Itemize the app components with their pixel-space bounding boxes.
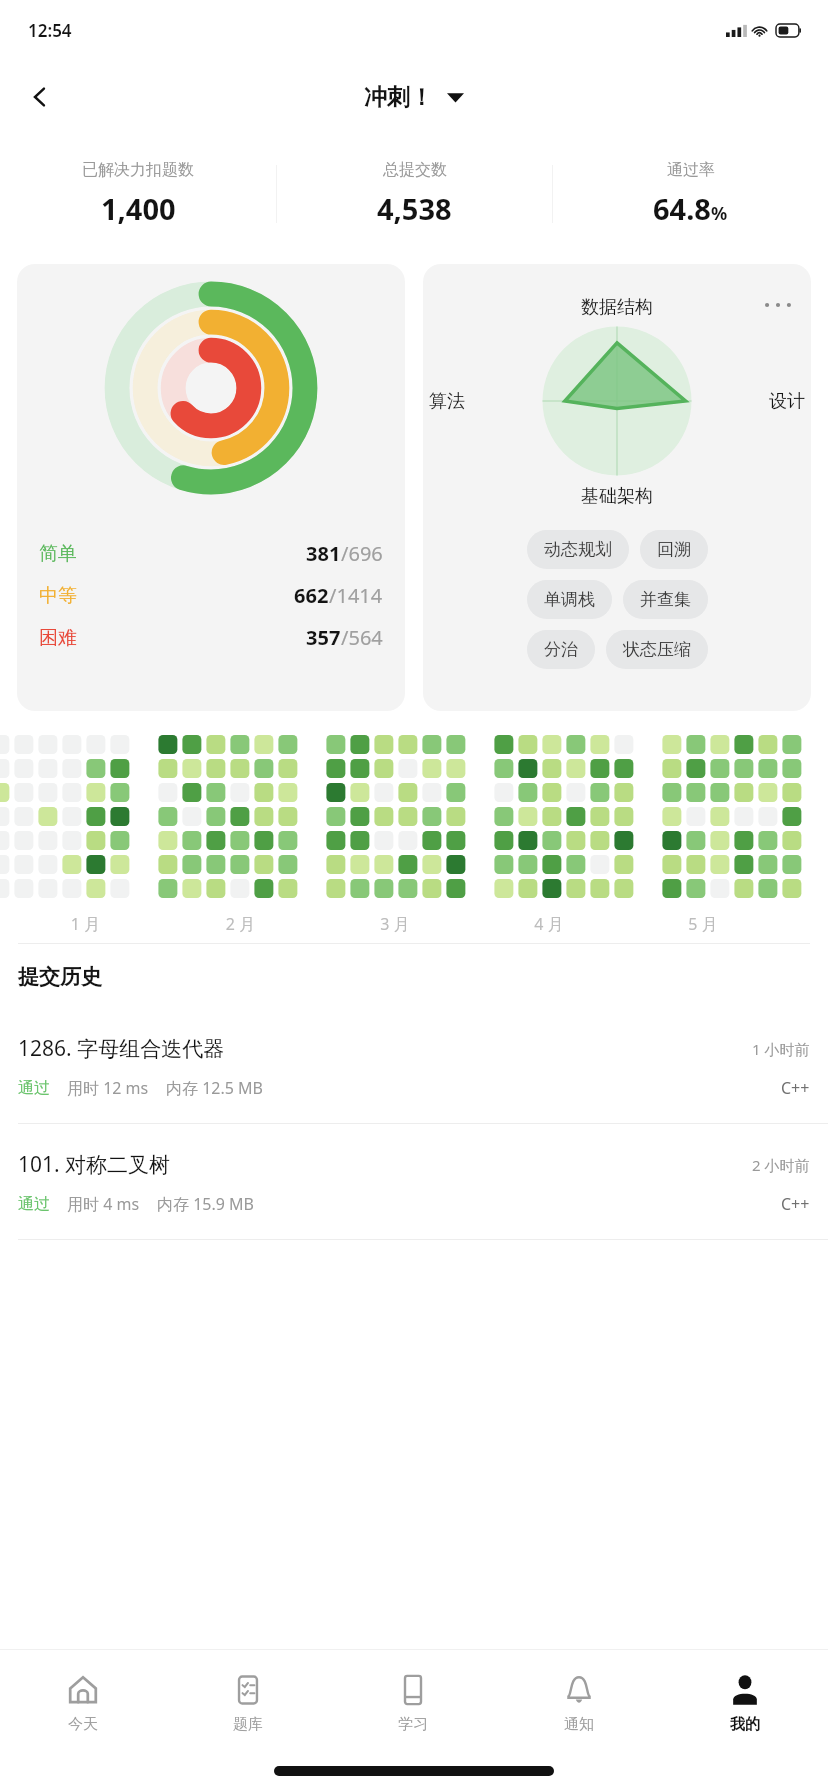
button[interactable]: 我的 — [662, 1650, 828, 1758]
staticText: 数据结构 — [581, 296, 653, 319]
staticText: 通过 — [18, 1078, 50, 1098]
button[interactable]: 简单 — [17, 264, 405, 711]
staticText: C++ — [781, 1077, 810, 1099]
button[interactable]: 并查集 — [623, 580, 708, 619]
button[interactable]: 回溯 — [640, 530, 708, 569]
staticText: 内存 15.9 MB — [157, 1193, 254, 1215]
staticText: 3 月 — [318, 913, 472, 935]
staticText: 通过率 — [667, 160, 715, 180]
staticText: 并查集 — [640, 589, 691, 610]
button[interactable]: 分治 — [527, 630, 595, 669]
button[interactable]: More options — [761, 288, 795, 322]
staticText: 101. 对称二叉树 — [18, 1150, 171, 1179]
staticText: 通过 — [18, 1194, 50, 1214]
staticText: 4 月 — [472, 913, 626, 935]
staticText: 总提交数 — [383, 160, 447, 180]
button[interactable]: 总提交数 — [277, 160, 552, 228]
button[interactable]: More options — [423, 264, 811, 711]
staticText: 简单 — [39, 542, 77, 566]
staticText: 单调栈 — [544, 589, 595, 610]
button[interactable]: 通过率 — [553, 160, 828, 228]
staticText: 12:54 — [28, 19, 72, 42]
staticText: 基础架构 — [581, 485, 653, 508]
staticText: 357 — [306, 624, 341, 651]
staticText: 381 — [306, 540, 341, 567]
button[interactable]: 单调栈 — [527, 580, 612, 619]
staticText: 2 月 — [163, 913, 318, 935]
staticText: 冲刺！ — [364, 83, 433, 112]
staticText: 64.8 — [653, 189, 711, 228]
staticText: 动态规划 — [544, 539, 612, 560]
staticText: 内存 12.5 MB — [166, 1077, 263, 1099]
button[interactable]: Back — [12, 69, 68, 125]
staticText: 提交历史 — [18, 964, 102, 990]
button[interactable]: 冲刺！ — [364, 83, 464, 112]
staticText: 题库 — [233, 1715, 263, 1734]
button[interactable]: 今天 — [0, 1650, 165, 1758]
staticText: 4,538 — [377, 189, 452, 228]
staticText: 5 月 — [626, 913, 780, 935]
staticText: 学习 — [398, 1715, 428, 1734]
staticText: 设计 — [769, 390, 805, 413]
staticText: 1286. 字母组合迭代器 — [18, 1034, 225, 1063]
staticText: 1,400 — [101, 189, 176, 228]
staticText: 今天 — [68, 1715, 98, 1734]
staticText: 用时 4 ms — [67, 1193, 140, 1215]
staticText: 回溯 — [657, 539, 691, 560]
staticText: /696 — [341, 540, 383, 567]
button[interactable]: 学习 — [330, 1650, 496, 1758]
staticText: 分治 — [544, 639, 578, 660]
staticText: 2 小时前 — [752, 1155, 810, 1175]
button[interactable]: 已解决力扣题数 — [0, 160, 276, 228]
button[interactable]: 动态规划 — [527, 530, 629, 569]
staticText: % — [711, 201, 728, 226]
staticText: 已解决力扣题数 — [82, 160, 194, 180]
button[interactable]: 1286. 字母组合迭代器 — [0, 1008, 828, 1123]
staticText: 用时 12 ms — [67, 1077, 149, 1099]
button[interactable]: 状态压缩 — [606, 630, 708, 669]
staticText: /564 — [341, 624, 383, 651]
staticText: 通知 — [564, 1715, 594, 1734]
staticText: 1 小时前 — [752, 1039, 810, 1059]
staticText: 算法 — [429, 390, 465, 413]
button[interactable]: 通知 — [496, 1650, 662, 1758]
staticText: /1414 — [329, 582, 383, 609]
staticText: 状态压缩 — [623, 639, 691, 660]
staticText: 中等 — [39, 584, 77, 608]
staticText: 1 月 — [8, 913, 163, 935]
staticText: 我的 — [730, 1715, 760, 1734]
button[interactable]: 题库 — [165, 1650, 330, 1758]
staticText: 662 — [294, 582, 329, 609]
staticText: C++ — [781, 1193, 810, 1215]
staticText: 困难 — [39, 626, 77, 650]
button[interactable]: 101. 对称二叉树 — [0, 1124, 828, 1239]
